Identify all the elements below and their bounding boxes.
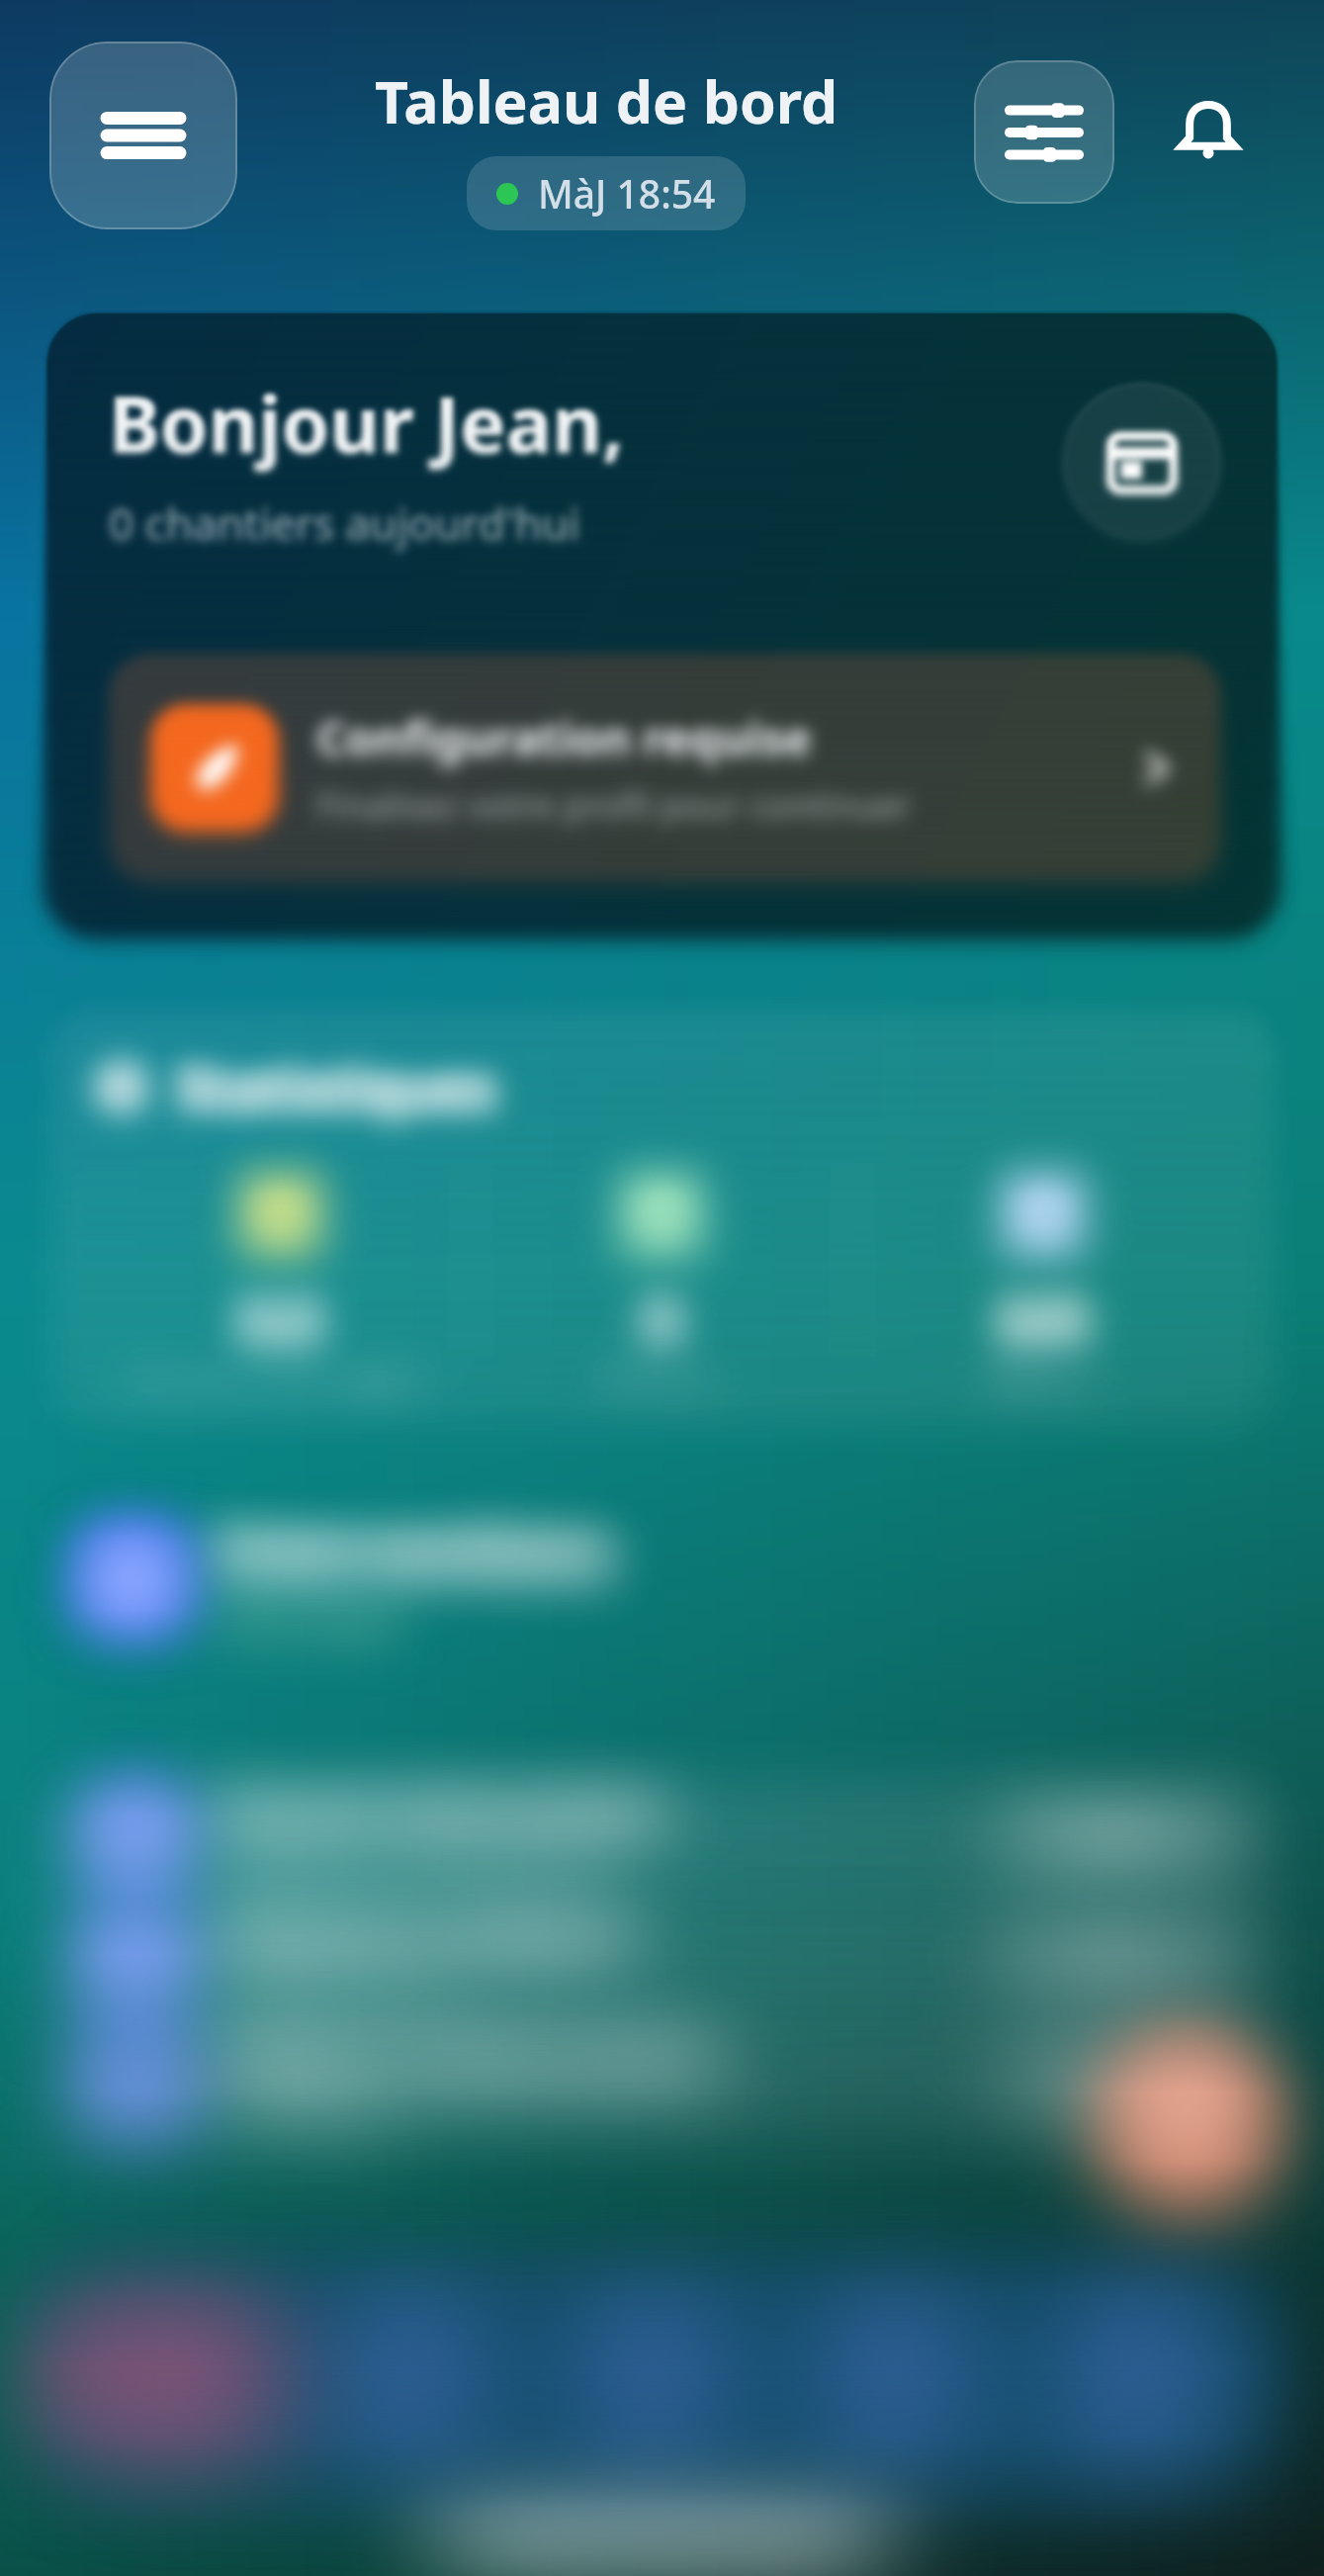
button[interactable]: 0 bbox=[472, 1163, 851, 1386]
button[interactable]: Navigation bbox=[47, 2280, 289, 2474]
button[interactable]: 0/0 bbox=[853, 1163, 1233, 1386]
button[interactable]: 0.0 bbox=[91, 1163, 470, 1386]
button[interactable]: Notifications bbox=[1154, 77, 1263, 186]
button[interactable]: Navigation bbox=[773, 2280, 1015, 2474]
button[interactable]: Nouvelle intervention bbox=[1109, 2041, 1268, 2199]
button[interactable]: Navigation bbox=[289, 2280, 531, 2474]
button[interactable]: Navigation bbox=[531, 2280, 773, 2474]
button[interactable]: Filtres bbox=[974, 60, 1114, 204]
button[interactable]: 0/0 bbox=[853, 1163, 1233, 1386]
button[interactable]: 0.0 bbox=[91, 1163, 470, 1386]
button[interactable]: Calendrier bbox=[1063, 383, 1221, 541]
button[interactable]: Navigation bbox=[289, 2280, 531, 2474]
button[interactable]: Calendrier bbox=[1063, 383, 1221, 541]
button[interactable]: Menu bbox=[49, 42, 237, 229]
button[interactable]: Navigation bbox=[1015, 2280, 1258, 2474]
button[interactable]: Navigation bbox=[289, 2280, 531, 2474]
button[interactable]: Navigation bbox=[773, 2280, 1015, 2474]
button[interactable]: Matériel à préparer bbox=[47, 1903, 1277, 2013]
button[interactable]: Navigation bbox=[289, 2280, 531, 2474]
button[interactable]: Configuration requise bbox=[109, 654, 1221, 883]
button[interactable]: Menu bbox=[49, 42, 237, 229]
button[interactable]: Navigation bbox=[531, 2280, 773, 2474]
button[interactable]: Rapport hebdomadaire bbox=[47, 2025, 1277, 2136]
button[interactable]: Aucune intervention bbox=[47, 1780, 1277, 1891]
button[interactable]: Matériel à préparer bbox=[47, 1903, 1277, 2013]
button[interactable]: Nouvelle intervention bbox=[1109, 2041, 1268, 2199]
button[interactable]: Navigation bbox=[289, 2280, 531, 2474]
button[interactable]: 0 bbox=[472, 1163, 851, 1386]
button[interactable]: Calendrier bbox=[1063, 383, 1221, 541]
button[interactable]: Navigation bbox=[1015, 2280, 1258, 2474]
button[interactable]: Navigation bbox=[289, 2280, 531, 2474]
button[interactable]: Notifications bbox=[1154, 77, 1263, 186]
button[interactable]: Navigation bbox=[1015, 2280, 1258, 2474]
button[interactable]: Matériel à préparer bbox=[47, 1903, 1277, 2013]
button[interactable]: Navigation bbox=[531, 2280, 773, 2474]
button[interactable]: Notifications bbox=[1154, 77, 1263, 186]
button[interactable]: Navigation bbox=[531, 2280, 773, 2474]
button[interactable]: Navigation bbox=[47, 2280, 289, 2474]
button[interactable]: Rapport hebdomadaire bbox=[47, 2025, 1277, 2136]
button[interactable]: Calendrier bbox=[1063, 383, 1221, 541]
button[interactable]: Nouvelle intervention bbox=[1109, 2041, 1268, 2199]
button[interactable]: Nouvelle intervention bbox=[1109, 2041, 1268, 2199]
button[interactable]: Navigation bbox=[47, 2280, 289, 2474]
button[interactable]: 0 bbox=[472, 1163, 851, 1386]
button[interactable]: Configuration requise bbox=[109, 654, 1221, 883]
button[interactable]: Nouvelle intervention bbox=[1109, 2041, 1268, 2199]
button[interactable]: Menu bbox=[49, 42, 237, 229]
button[interactable]: Navigation bbox=[289, 2280, 531, 2474]
button[interactable]: Notifications bbox=[1154, 77, 1263, 186]
button[interactable]: Notifications bbox=[1154, 77, 1263, 186]
button[interactable]: Matériel à préparer bbox=[47, 1903, 1277, 2013]
button[interactable]: 0 bbox=[472, 1163, 851, 1386]
button[interactable]: 0/0 bbox=[853, 1163, 1233, 1386]
button[interactable]: 0 bbox=[472, 1163, 851, 1386]
button[interactable]: Filtres bbox=[974, 60, 1114, 204]
button[interactable]: Menu bbox=[49, 42, 237, 229]
button[interactable]: Configuration requise bbox=[109, 654, 1221, 883]
button[interactable]: Navigation bbox=[289, 2280, 531, 2474]
button[interactable]: Navigation bbox=[47, 2280, 289, 2474]
button[interactable]: 0 bbox=[472, 1163, 851, 1386]
button[interactable]: Calendrier bbox=[1063, 383, 1221, 541]
button[interactable]: Rapport hebdomadaire bbox=[47, 2025, 1277, 2136]
button[interactable]: Nouvelle intervention bbox=[1109, 2041, 1268, 2199]
button[interactable]: Matériel à préparer bbox=[47, 1903, 1277, 2013]
button[interactable]: Filtres bbox=[974, 60, 1114, 204]
button[interactable]: Navigation bbox=[47, 2280, 289, 2474]
button[interactable]: 0.0 bbox=[91, 1163, 470, 1386]
button[interactable]: Configuration requise bbox=[109, 654, 1221, 883]
button[interactable]: Rapport hebdomadaire bbox=[47, 2025, 1277, 2136]
button[interactable]: 0.0 bbox=[91, 1163, 470, 1386]
button[interactable]: Aucune intervention bbox=[47, 1780, 1277, 1891]
button[interactable]: 0 bbox=[472, 1163, 851, 1386]
button[interactable]: Nouvelle intervention bbox=[1109, 2041, 1268, 2199]
button[interactable]: Menu bbox=[49, 42, 237, 229]
button[interactable]: Navigation bbox=[47, 2280, 289, 2474]
button[interactable]: Filtres bbox=[974, 60, 1114, 204]
button[interactable]: Navigation bbox=[47, 2280, 289, 2474]
button[interactable]: Filtres bbox=[974, 60, 1114, 204]
button[interactable]: 0 bbox=[472, 1163, 851, 1386]
button[interactable]: Menu bbox=[49, 42, 237, 229]
button[interactable]: 0 bbox=[472, 1163, 851, 1386]
button[interactable]: Matériel à préparer bbox=[47, 1903, 1277, 2013]
button[interactable]: Navigation bbox=[289, 2280, 531, 2474]
button[interactable]: Aucune intervention bbox=[47, 1780, 1277, 1891]
button[interactable]: Navigation bbox=[1015, 2280, 1258, 2474]
button[interactable]: Notifications bbox=[1154, 77, 1263, 186]
button[interactable]: 0.0 bbox=[91, 1163, 470, 1386]
button[interactable]: Rapport hebdomadaire bbox=[47, 2025, 1277, 2136]
button[interactable]: Calendrier bbox=[1063, 383, 1221, 541]
button[interactable]: Navigation bbox=[289, 2280, 531, 2474]
button[interactable]: 0/0 bbox=[853, 1163, 1233, 1386]
button[interactable]: Filtres bbox=[974, 60, 1114, 204]
button[interactable]: Configuration requise bbox=[109, 654, 1221, 883]
button[interactable]: 0/0 bbox=[853, 1163, 1233, 1386]
button[interactable]: Nouvelle intervention bbox=[1109, 2041, 1268, 2199]
button[interactable]: Navigation bbox=[289, 2280, 531, 2474]
button[interactable]: Menu bbox=[49, 42, 237, 229]
button[interactable]: Navigation bbox=[531, 2280, 773, 2474]
